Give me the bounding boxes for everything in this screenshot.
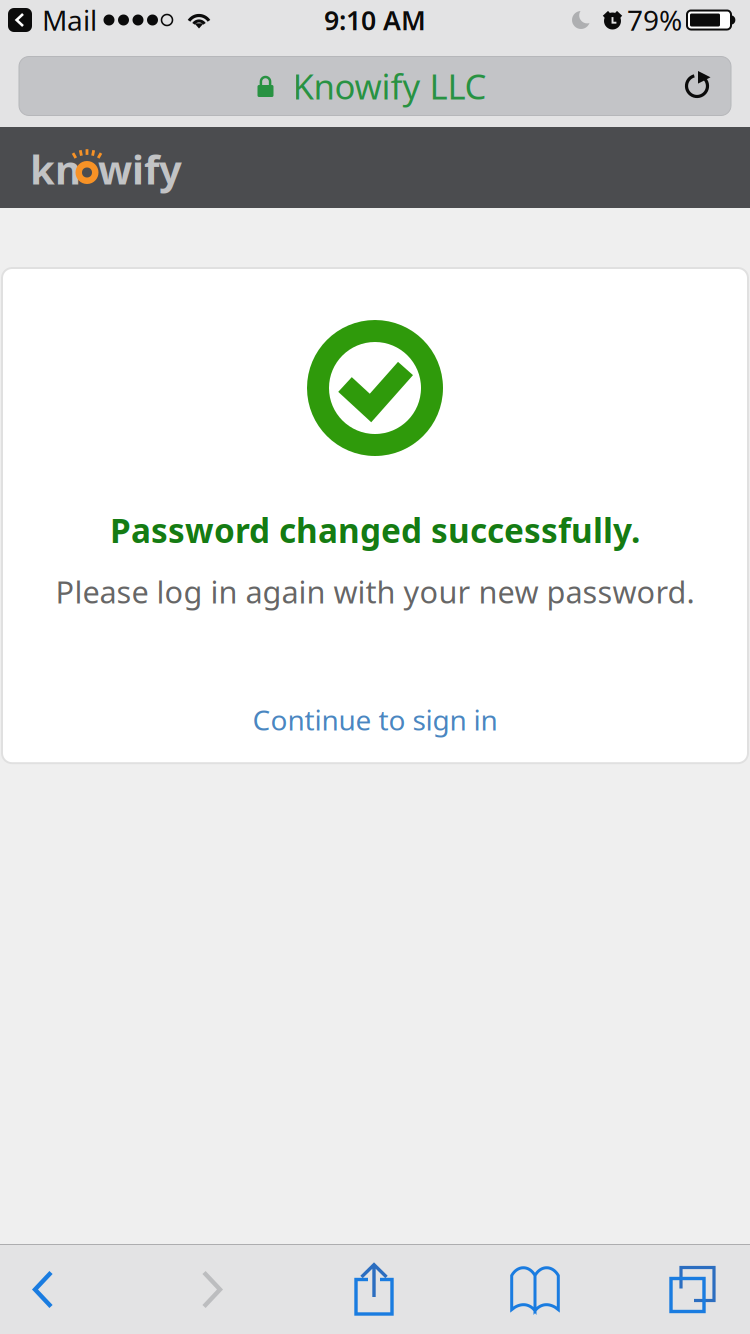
button[interactable]: Bookmarks [471,1245,599,1334]
button[interactable]: Tabs [629,1245,750,1334]
staticText: Please log in again with your new passwo… [55,571,694,612]
staticText: Knowify LLC [292,63,486,109]
staticText: 9:10 AM [324,2,426,38]
staticText: Password changed successfully. [110,508,640,552]
staticText: 79% [627,1,682,39]
button[interactable]: Mail [0,0,97,40]
button[interactable]: Back [0,1245,107,1334]
staticText: kn [30,142,81,196]
button[interactable]: Continue to sign in [236,689,513,750]
button[interactable]: Knowify LLC [0,45,750,127]
staticText: Continue to sign in [252,701,497,738]
button[interactable]: Forward [148,1245,276,1334]
button[interactable]: Share [310,1245,438,1334]
staticText: wify [98,142,182,196]
staticText: Mail [42,1,97,39]
